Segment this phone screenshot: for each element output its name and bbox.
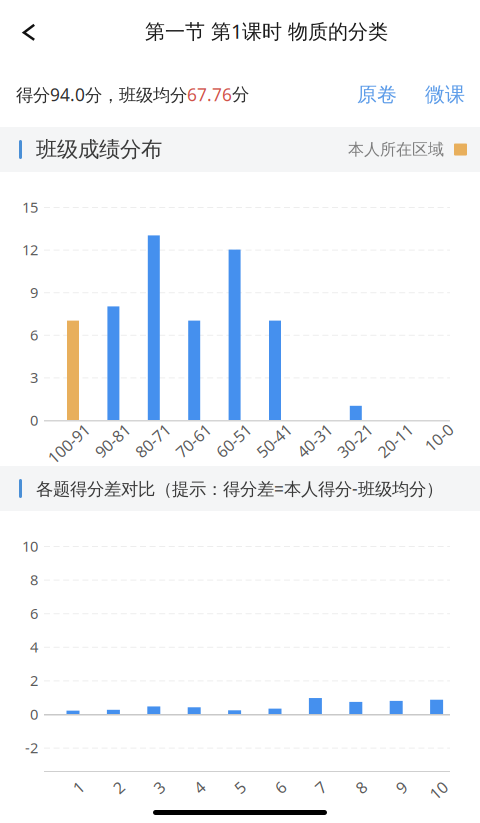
staticText: 67.76 bbox=[187, 83, 232, 106]
staticText: 6 bbox=[278, 782, 287, 804]
staticText: 原卷 bbox=[357, 82, 397, 107]
staticText: 8 bbox=[359, 782, 368, 804]
staticText: 30-21 bbox=[337, 436, 378, 458]
staticText: 60-51 bbox=[216, 436, 257, 458]
staticText: 2 bbox=[30, 671, 38, 690]
staticText: 10 bbox=[431, 782, 449, 804]
staticText: 8 bbox=[30, 570, 38, 589]
staticText: 90-81 bbox=[94, 436, 135, 458]
staticText: 4 bbox=[30, 637, 38, 657]
staticText: 2 bbox=[116, 782, 125, 804]
staticText: 10 bbox=[22, 536, 38, 556]
button[interactable]: 原卷 bbox=[351, 72, 403, 117]
staticText: 班级成绩分布 bbox=[36, 136, 162, 163]
staticText: 100-91 bbox=[45, 436, 95, 458]
staticText: 4 bbox=[197, 782, 206, 804]
staticText: 10-0 bbox=[427, 436, 459, 458]
staticText: 第一节 第1课时 物质的分类 bbox=[145, 18, 388, 44]
staticText: 9 bbox=[399, 782, 408, 804]
staticText: 9 bbox=[30, 282, 38, 302]
staticText: 40-31 bbox=[296, 436, 337, 458]
staticText: 得分94.0分，班级均分 bbox=[16, 83, 187, 106]
staticText: -2 bbox=[25, 738, 38, 757]
staticText: 70-61 bbox=[175, 436, 216, 458]
staticText: 1 bbox=[76, 782, 85, 804]
staticText: 7 bbox=[318, 782, 327, 804]
staticText: 6 bbox=[30, 603, 38, 623]
staticText: 12 bbox=[22, 240, 38, 259]
button[interactable]: 微课 bbox=[419, 72, 471, 117]
staticText: 本人所在区域 bbox=[348, 140, 444, 159]
staticText: 6 bbox=[30, 325, 38, 345]
staticText: 3 bbox=[157, 782, 166, 804]
staticText: 50-41 bbox=[256, 436, 297, 458]
staticText: 3 bbox=[30, 368, 38, 387]
button[interactable]: Back bbox=[0, 0, 52, 62]
staticText: 各题得分差对比（提示：得分差=本人得分-班级均分） bbox=[36, 477, 443, 500]
staticText: 分 bbox=[232, 84, 249, 105]
staticText: 微课 bbox=[425, 82, 465, 107]
staticText: 20-11 bbox=[377, 436, 418, 458]
staticText: 80-71 bbox=[135, 436, 176, 458]
staticText: 15 bbox=[22, 197, 38, 217]
staticText: 5 bbox=[238, 782, 247, 804]
staticText: 0 bbox=[30, 704, 38, 724]
staticText: 0 bbox=[30, 410, 38, 430]
